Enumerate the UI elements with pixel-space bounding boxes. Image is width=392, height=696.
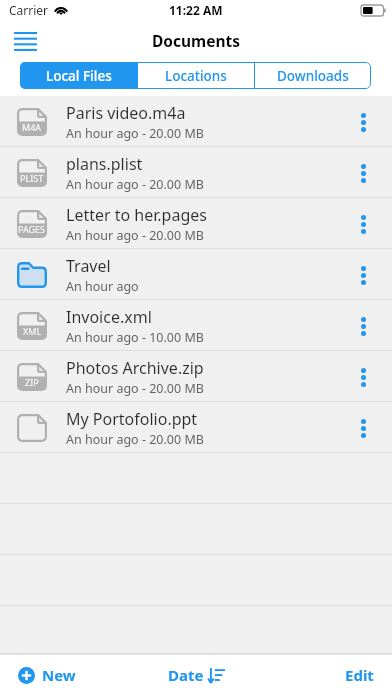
staticText: Downloads <box>277 67 349 85</box>
staticText: New <box>42 665 76 685</box>
staticText: An hour ago - 20.00 MB <box>66 431 204 448</box>
staticText: Letter to her.pages <box>66 204 207 226</box>
staticText: plans.plist <box>66 153 143 175</box>
staticText: Documents <box>152 30 241 51</box>
button[interactable]: Local Files <box>20 62 137 89</box>
button[interactable]: Menu <box>6 22 44 60</box>
staticText: An hour ago - 20.00 MB <box>66 176 204 193</box>
staticText: Invoice.xml <box>66 306 152 328</box>
button[interactable]: My Portofolio.ppt <box>0 402 392 453</box>
button[interactable]: Edit <box>345 665 374 685</box>
button[interactable]: More options <box>348 311 378 341</box>
staticText: Local Files <box>46 67 112 85</box>
button[interactable]: More options <box>348 158 378 188</box>
staticText: Edit <box>345 665 374 685</box>
button[interactable]: New <box>18 665 76 685</box>
button[interactable]: Locations <box>138 62 254 89</box>
button[interactable]: XML <box>0 300 392 351</box>
staticText: An hour ago - 20.00 MB <box>66 380 204 397</box>
button[interactable]: More options <box>348 362 378 392</box>
staticText: Photos Archive.zip <box>66 357 204 379</box>
staticText: Carrier <box>9 2 49 18</box>
staticText: PLIST <box>20 172 44 184</box>
staticText: Travel <box>66 255 111 277</box>
button[interactable]: Date <box>168 665 225 685</box>
staticText: Date <box>168 665 204 685</box>
staticText: Paris video.m4a <box>66 102 186 124</box>
button[interactable]: More options <box>348 260 378 290</box>
button[interactable]: PAGES <box>0 198 392 249</box>
button[interactable]: Downloads <box>255 62 371 89</box>
button[interactable]: More options <box>348 209 378 239</box>
staticText: An hour ago - 10.00 MB <box>66 329 204 346</box>
button[interactable]: Travel <box>0 249 392 300</box>
staticText: Locations <box>165 67 227 85</box>
button[interactable]: More options <box>348 413 378 443</box>
staticText: PAGES <box>18 223 46 235</box>
staticText: My Portofolio.ppt <box>66 408 198 430</box>
button[interactable]: More options <box>348 107 378 137</box>
staticText: XML <box>23 325 42 337</box>
button[interactable]: ZIP <box>0 351 392 402</box>
button[interactable]: PLIST <box>0 147 392 198</box>
staticText: ZIP <box>25 376 39 388</box>
staticText: An hour ago <box>66 278 139 295</box>
staticText: An hour ago - 20.00 MB <box>66 227 204 244</box>
staticText: M4A <box>22 121 42 133</box>
button[interactable]: M4A <box>0 96 392 147</box>
staticText: An hour ago - 20.00 MB <box>66 125 204 142</box>
staticText: 11:22 AM <box>169 2 223 18</box>
